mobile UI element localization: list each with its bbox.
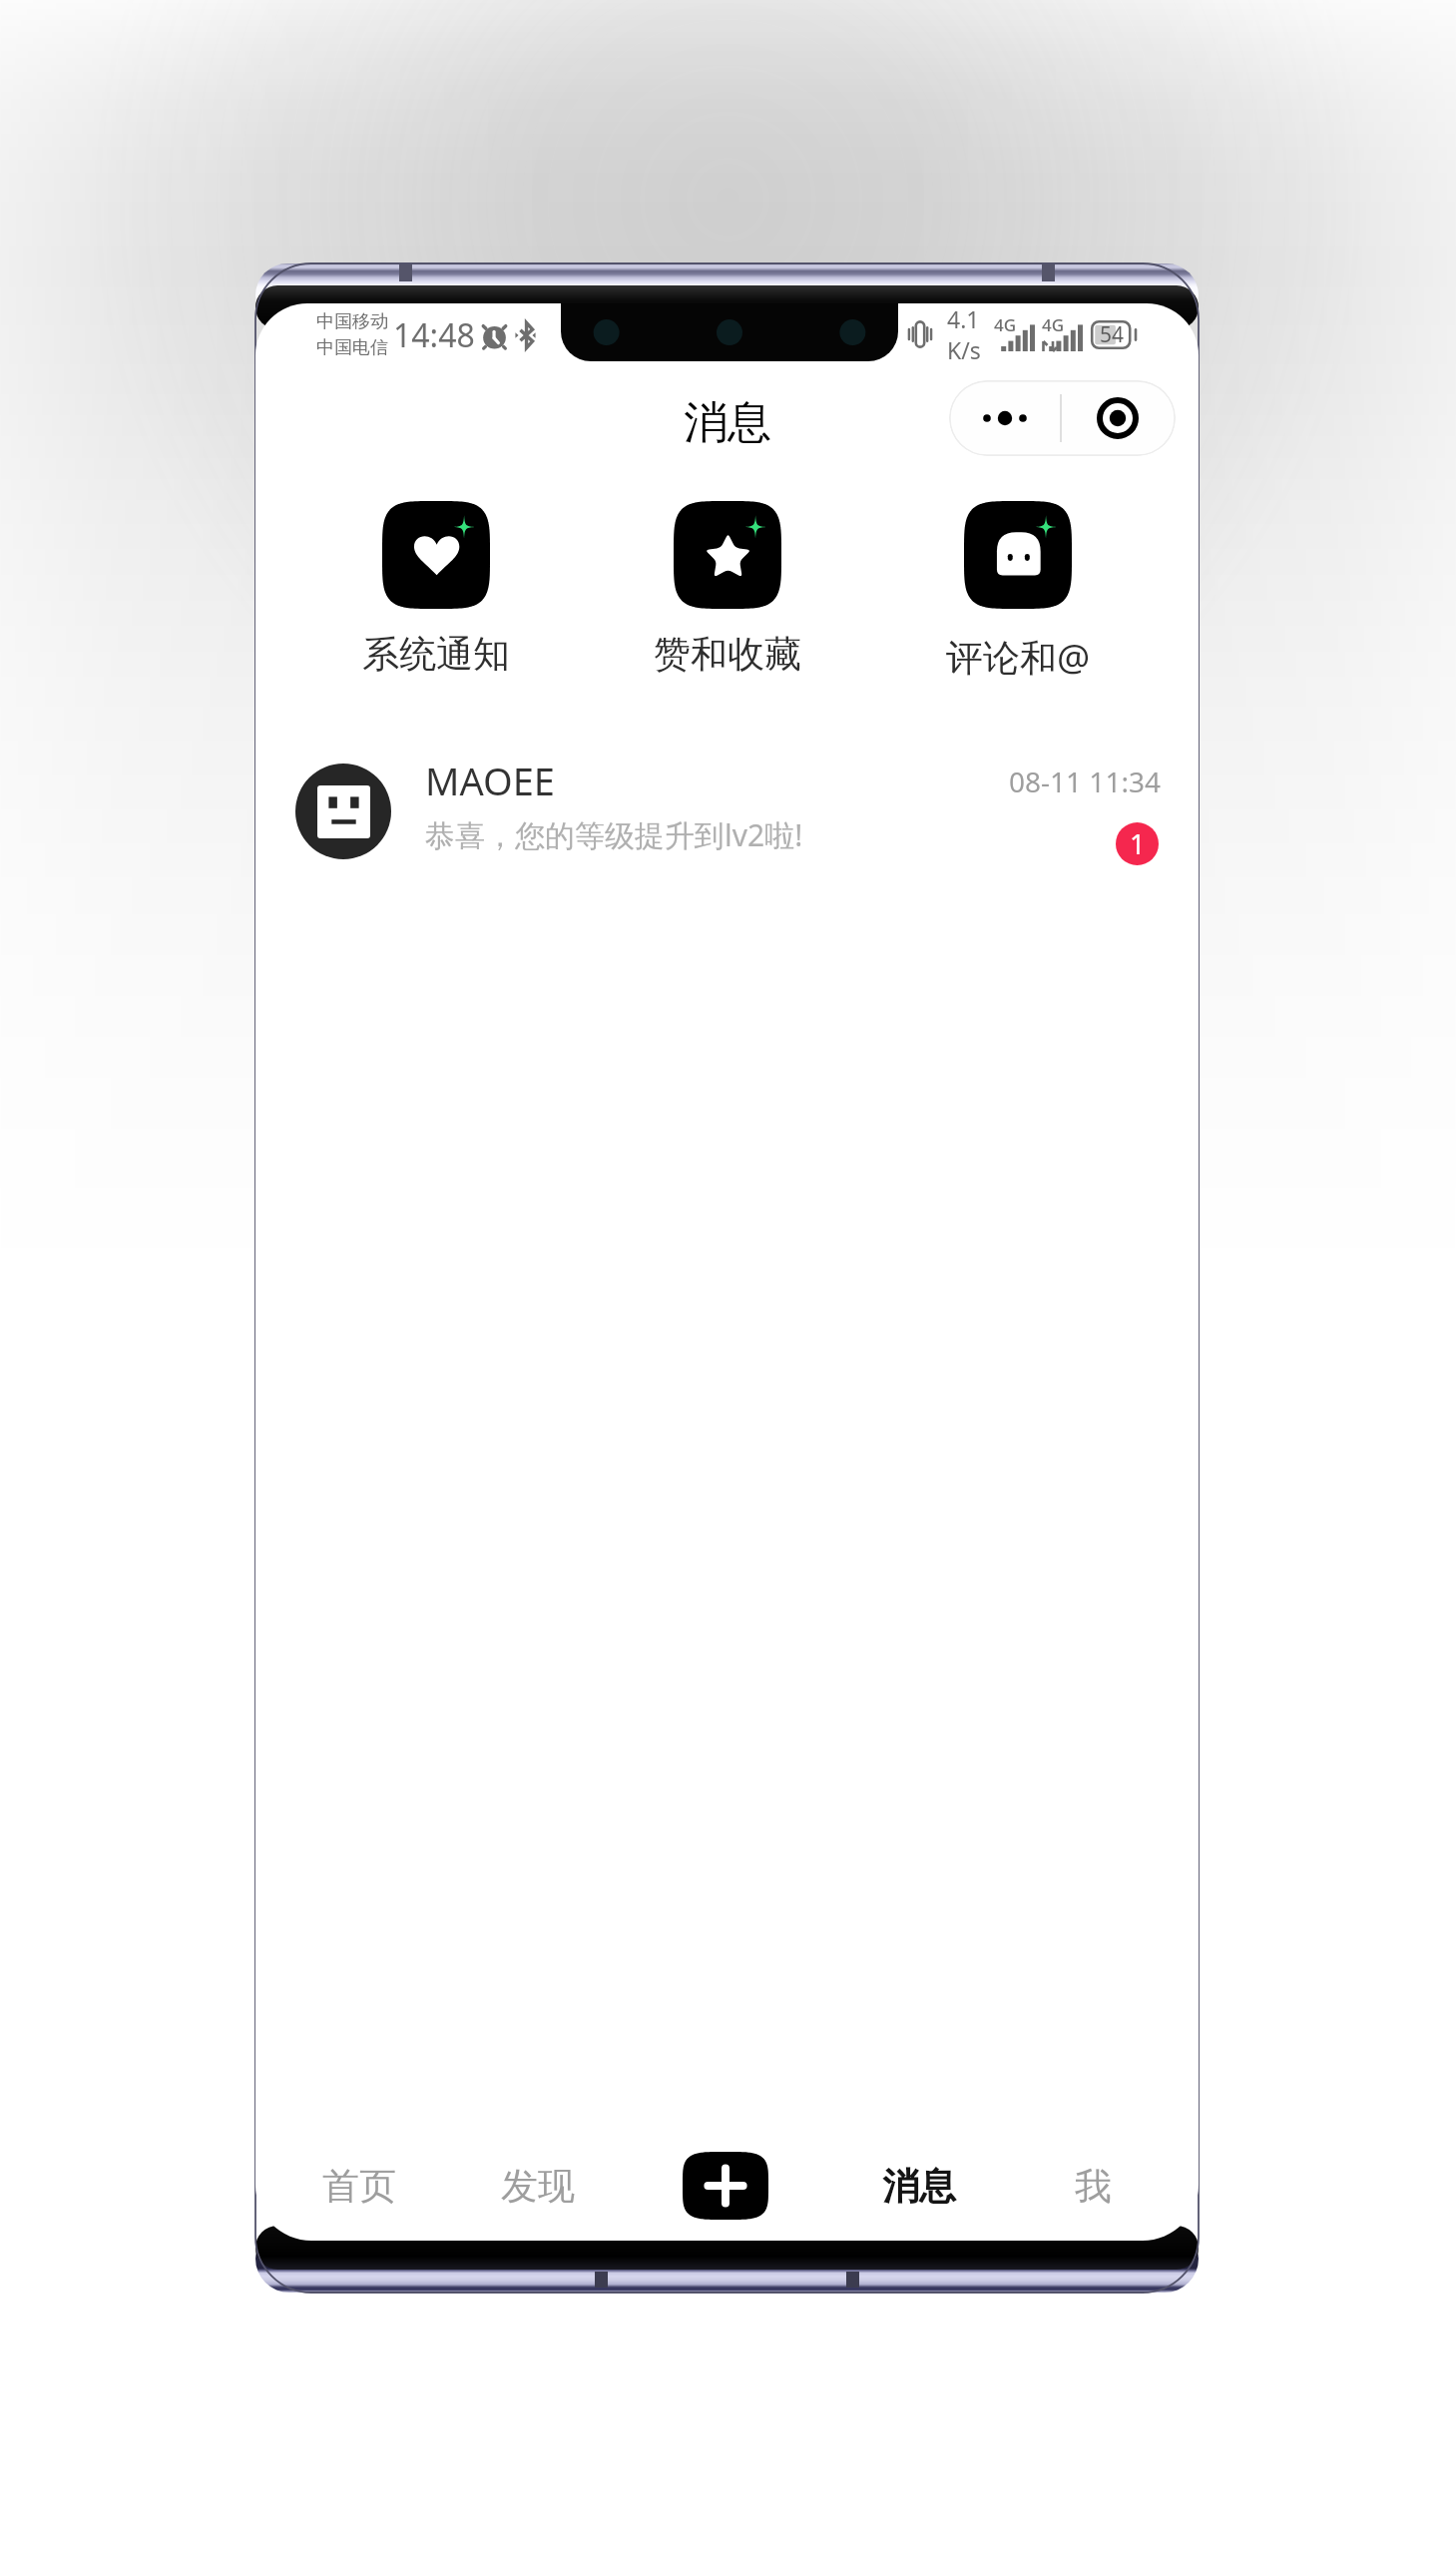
button[interactable]: Create post (683, 2152, 768, 2220)
button[interactable]: 系统通知 (311, 501, 561, 678)
staticText: 1 (1130, 825, 1146, 862)
staticText: 消息 (882, 2163, 956, 2210)
button[interactable]: 赞和收藏 (603, 501, 852, 678)
staticText: 评论和@ (946, 631, 1091, 682)
staticText: 首页 (322, 2163, 396, 2210)
staticText: K/s (947, 334, 981, 365)
staticText: 中国电信 (316, 336, 388, 359)
button[interactable]: 评论和@ (893, 501, 1143, 682)
staticText: 发现 (501, 2163, 575, 2210)
staticText: 08-11 11:34 (1009, 763, 1161, 800)
staticText: 赞和收藏 (654, 631, 801, 678)
button[interactable]: 发现 (463, 2136, 613, 2236)
button[interactable]: Mini program menu (949, 380, 1176, 456)
staticText: MAOEE (425, 755, 555, 806)
button[interactable]: 首页 (284, 2136, 434, 2236)
staticText: 4G (1042, 313, 1065, 336)
button[interactable]: 消息 (844, 2136, 994, 2236)
staticText: 4.1 (947, 303, 980, 334)
staticText: 中国移动 (316, 310, 388, 333)
staticText: 54 (1100, 320, 1125, 349)
staticText: 我 (1075, 2163, 1112, 2210)
staticText: 系统通知 (362, 631, 510, 678)
button[interactable]: MAOEE (255, 747, 1199, 878)
staticText: 4G (994, 313, 1017, 336)
button[interactable]: 我 (1018, 2136, 1168, 2236)
staticText: 恭喜，您的等级提升到lv2啦! (425, 814, 803, 855)
staticText: 消息 (684, 395, 771, 450)
staticText: 14:48 (393, 313, 475, 357)
